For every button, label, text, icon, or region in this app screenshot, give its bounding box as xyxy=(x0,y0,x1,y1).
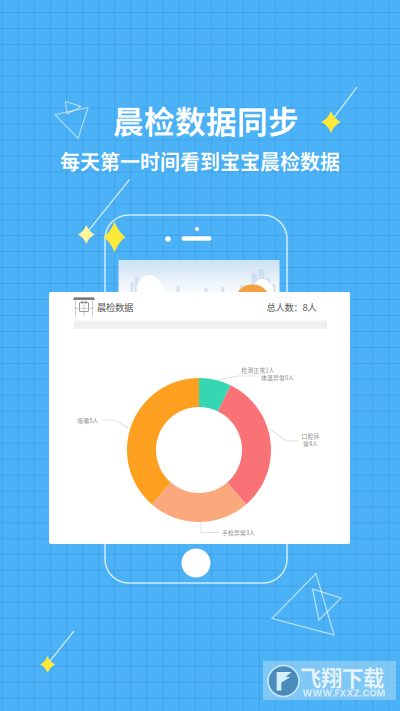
staticText: 总人数：8人 xyxy=(266,300,316,314)
staticText: 咳嗽5人 xyxy=(77,416,98,425)
staticText: 口腔异 xyxy=(301,432,319,440)
staticText: 晨检数据同步 xyxy=(113,98,299,142)
staticText: 手检异常3人 xyxy=(222,528,255,537)
staticText: 检测正常1人 xyxy=(241,366,274,374)
staticText: 飞翔下载 xyxy=(300,662,384,692)
staticText: WWW.FXXZ.COM xyxy=(302,687,385,699)
staticText: 体温异常0人 xyxy=(261,373,294,382)
staticText: 每天第一时间看到宝宝晨检数据 xyxy=(60,146,340,175)
staticText: 晨检数据 xyxy=(97,300,133,314)
staticText: 常4人 xyxy=(303,439,318,448)
